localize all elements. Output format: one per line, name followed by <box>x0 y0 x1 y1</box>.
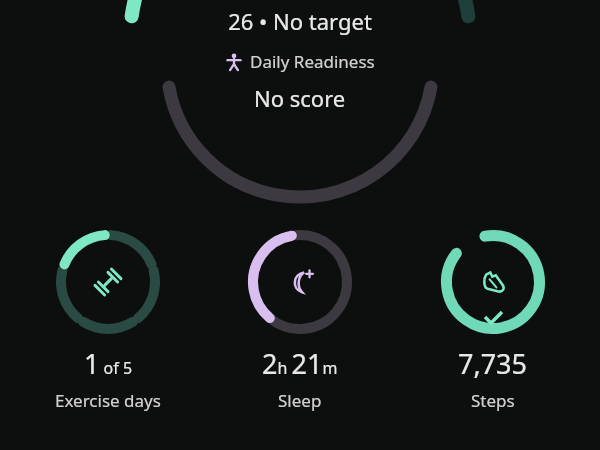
staticText: 1 of 5 <box>84 345 133 382</box>
button[interactable]: Exercise days <box>23 230 193 412</box>
staticText: Steps <box>471 389 515 412</box>
staticText: No score <box>254 83 346 113</box>
staticText: 2h 21m <box>262 345 338 382</box>
staticText: Exercise days <box>55 389 161 412</box>
staticText: Daily Readiness <box>250 50 375 73</box>
staticText: 7,735 <box>458 345 528 382</box>
button[interactable]: Steps <box>408 230 578 412</box>
button[interactable]: 26 • No target <box>0 6 600 113</box>
button[interactable]: Sleep <box>215 230 385 412</box>
staticText: Sleep <box>278 389 322 412</box>
staticText: 26 • No target <box>228 6 372 36</box>
